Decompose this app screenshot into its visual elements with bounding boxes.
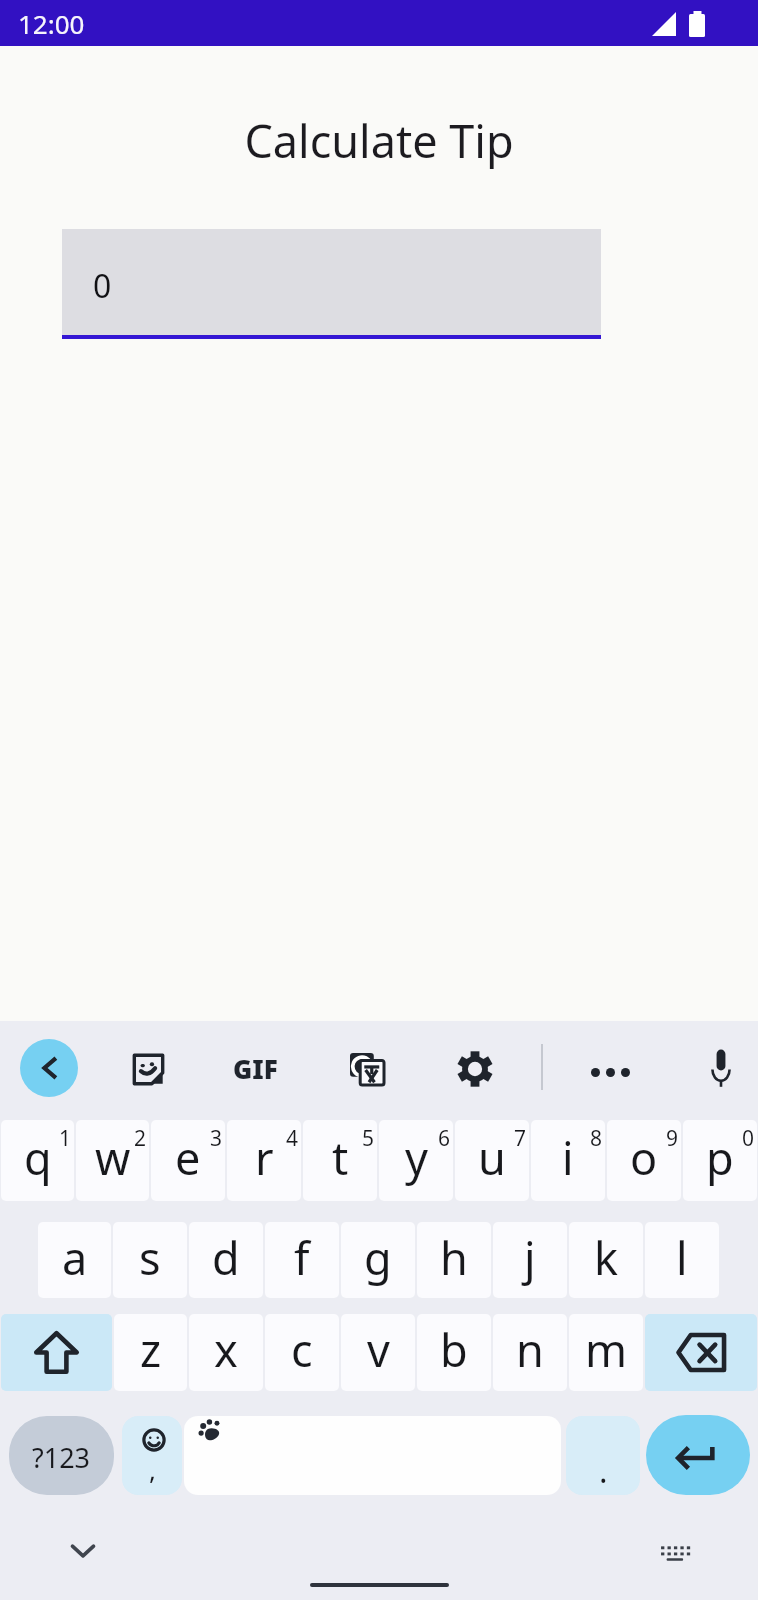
staticText: 3 — [210, 1124, 223, 1153]
button[interactable]: More options — [582, 1044, 638, 1100]
button[interactable]: t — [303, 1120, 377, 1201]
button[interactable]: Back — [20, 1039, 78, 1097]
staticText: ?123 — [32, 1439, 91, 1476]
button[interactable]: i — [531, 1120, 605, 1201]
button[interactable]: 0 — [62, 229, 601, 339]
staticText: r — [255, 1127, 274, 1188]
staticText: a — [62, 1227, 88, 1288]
button[interactable]: ?123 — [9, 1416, 114, 1495]
button[interactable]: q — [1, 1120, 74, 1201]
staticText: t — [332, 1127, 349, 1188]
staticText: i — [562, 1127, 574, 1188]
staticText: h — [440, 1227, 468, 1288]
button[interactable]: Emoji — [122, 1416, 182, 1495]
button[interactable]: m — [569, 1314, 643, 1391]
staticText: , — [149, 1452, 156, 1487]
staticText: y — [405, 1127, 428, 1188]
button[interactable]: j — [493, 1222, 567, 1298]
button[interactable]: Change keyboard — [646, 1531, 704, 1579]
button[interactable]: v — [341, 1314, 415, 1391]
button[interactable]: Settings — [447, 1044, 503, 1100]
staticText: q — [24, 1127, 52, 1188]
staticText: k — [594, 1227, 619, 1288]
button[interactable]: f — [265, 1222, 339, 1298]
staticText: 5 — [362, 1124, 375, 1153]
button[interactable]: b — [417, 1314, 491, 1391]
button[interactable]: o — [607, 1120, 681, 1201]
staticText: m — [585, 1319, 628, 1380]
staticText: d — [212, 1227, 240, 1288]
button[interactable]: Hide keyboard — [55, 1523, 111, 1579]
staticText: z — [140, 1319, 162, 1380]
staticText: f — [294, 1227, 310, 1288]
button[interactable]: GIF — [220, 1041, 290, 1095]
button[interactable]: s — [113, 1222, 187, 1298]
button[interactable]: Translate — [338, 1045, 394, 1101]
staticText: w — [95, 1127, 131, 1188]
staticText: 2 — [134, 1124, 147, 1153]
staticText: 8 — [590, 1124, 603, 1153]
staticText: n — [516, 1319, 544, 1380]
button[interactable]: l — [645, 1222, 719, 1298]
staticText: 4 — [286, 1124, 299, 1153]
button[interactable]: h — [417, 1222, 491, 1298]
button[interactable]: x — [189, 1314, 263, 1391]
staticText: s — [139, 1227, 161, 1288]
button[interactable]: n — [493, 1314, 567, 1391]
staticText: b — [440, 1319, 468, 1380]
button[interactable]: y — [379, 1120, 453, 1201]
staticText: x — [214, 1319, 238, 1380]
staticText: GIF — [233, 1051, 278, 1086]
button[interactable]: k — [569, 1222, 643, 1298]
button[interactable]: . — [566, 1416, 640, 1495]
button[interactable]: Space — [184, 1416, 561, 1495]
staticText: l — [676, 1227, 688, 1288]
button[interactable]: w — [76, 1120, 149, 1201]
button[interactable]: c — [265, 1314, 339, 1391]
staticText: j — [524, 1227, 536, 1288]
staticText: Calculate Tip — [0, 110, 758, 171]
button[interactable]: d — [189, 1222, 263, 1298]
button[interactable]: u — [455, 1120, 529, 1201]
staticText: 0 — [93, 264, 112, 308]
staticText: 6 — [438, 1124, 451, 1153]
button[interactable]: Shift — [1, 1314, 112, 1391]
staticText: g — [364, 1227, 392, 1288]
button[interactable]: Stickers — [120, 1045, 176, 1101]
staticText: c — [291, 1319, 313, 1380]
staticText: 9 — [666, 1124, 679, 1153]
button[interactable]: Enter — [646, 1415, 750, 1495]
staticText: v — [367, 1319, 390, 1380]
button[interactable]: p — [683, 1120, 757, 1201]
button[interactable]: Voice input — [693, 1043, 749, 1099]
button[interactable]: e — [151, 1120, 225, 1201]
staticText: 7 — [514, 1124, 527, 1153]
staticText: . — [599, 1449, 608, 1493]
button[interactable]: z — [114, 1314, 187, 1391]
button[interactable]: a — [38, 1222, 111, 1298]
staticText: e — [175, 1127, 201, 1188]
staticText: 12:00 — [18, 6, 85, 41]
staticText: o — [630, 1127, 658, 1188]
button[interactable]: g — [341, 1222, 415, 1298]
button[interactable]: Backspace — [645, 1314, 757, 1391]
staticText: 1 — [59, 1124, 72, 1153]
staticText: p — [706, 1127, 734, 1188]
staticText: u — [478, 1127, 506, 1188]
staticText: 0 — [742, 1124, 755, 1153]
button[interactable]: r — [227, 1120, 301, 1201]
